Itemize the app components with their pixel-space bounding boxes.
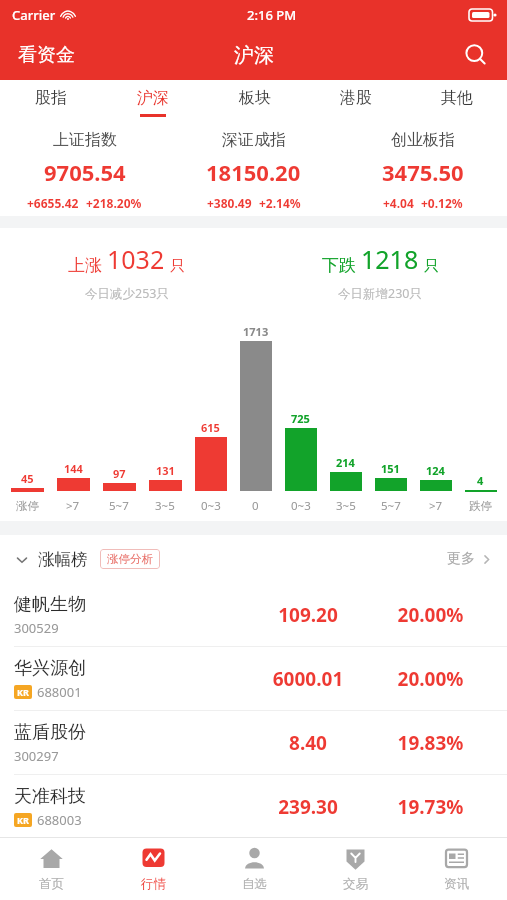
button[interactable]: 看资金: [14, 39, 79, 71]
staticText: KR: [17, 814, 29, 826]
staticText: 港股: [340, 88, 372, 108]
staticText: 300529: [14, 619, 59, 637]
staticText: 沪深: [137, 88, 169, 108]
staticText: 资讯: [444, 876, 469, 892]
staticText: 725: [291, 411, 310, 426]
button[interactable]: 天准科技: [0, 775, 507, 838]
button[interactable]: 其他: [406, 80, 507, 124]
staticText: 创业板指: [391, 130, 455, 150]
button[interactable]: 深证成指: [169, 124, 338, 216]
staticText: 300297: [14, 747, 59, 765]
staticText: 看资金: [18, 43, 75, 67]
button[interactable]: 行情: [102, 838, 204, 900]
button[interactable]: 股指: [0, 80, 102, 124]
staticText: >7: [429, 498, 443, 513]
staticText: >7: [66, 498, 80, 513]
staticText: 20.00%: [368, 666, 493, 692]
staticText: 6000.01: [248, 666, 368, 692]
staticText: 5~7: [109, 498, 129, 513]
staticText: 自选: [242, 876, 267, 892]
staticText: 其他: [441, 88, 473, 108]
staticText: 下跌: [322, 255, 356, 276]
staticText: 45: [21, 471, 34, 486]
staticText: +4.04: [383, 195, 414, 211]
staticText: 涨停: [16, 499, 39, 513]
staticText: 615: [201, 420, 220, 435]
staticText: 天准科技: [14, 785, 86, 808]
staticText: 1713: [243, 324, 269, 339]
button[interactable]: 港股: [305, 80, 406, 124]
staticText: 板块: [239, 88, 271, 108]
staticText: 19.73%: [368, 794, 493, 820]
staticText: 华兴源创: [14, 657, 86, 680]
button[interactable]: 创业板指: [338, 124, 507, 216]
staticText: +0.12%: [421, 195, 463, 211]
staticText: 沪深: [234, 43, 274, 68]
staticText: 0~3: [201, 498, 221, 513]
staticText: 只: [424, 257, 439, 276]
staticText: 8.40: [248, 730, 368, 756]
button[interactable]: 更多: [447, 550, 493, 568]
staticText: 健帆生物: [14, 593, 86, 616]
button[interactable]: 上涨: [0, 228, 253, 316]
staticText: 涨幅榜: [38, 549, 88, 570]
staticText: 19.83%: [368, 730, 493, 756]
staticText: 只: [170, 257, 185, 276]
staticText: 今日减少253只: [85, 285, 169, 302]
staticText: 688003: [37, 811, 82, 829]
staticText: +2.14%: [259, 195, 301, 211]
staticText: 20.00%: [368, 602, 493, 628]
button[interactable]: 沪深: [102, 80, 204, 124]
staticText: 97: [113, 466, 126, 481]
staticText: 214: [336, 455, 355, 470]
button[interactable]: 蓝盾股份: [0, 711, 507, 774]
staticText: +6655.42: [27, 195, 79, 211]
staticText: 131: [156, 463, 175, 478]
button[interactable]: 涨幅榜: [14, 549, 88, 570]
button[interactable]: 资讯: [406, 838, 507, 900]
staticText: 首页: [39, 876, 64, 892]
staticText: 行情: [141, 876, 166, 892]
staticText: 3475.50: [382, 157, 464, 187]
button[interactable]: Search: [459, 38, 493, 72]
button[interactable]: 健帆生物: [0, 583, 507, 646]
staticText: 交易: [343, 876, 368, 892]
staticText: KR: [17, 686, 29, 698]
staticText: 151: [381, 461, 400, 476]
staticText: +218.20%: [86, 195, 142, 211]
staticText: 109.20: [248, 602, 368, 628]
staticText: 深证成指: [222, 130, 286, 150]
staticText: 今日新增230只: [338, 285, 422, 302]
staticText: 3~5: [336, 498, 356, 513]
staticText: Carrier: [12, 6, 56, 24]
staticText: 跌停: [469, 499, 492, 513]
staticText: 上证指数: [53, 130, 117, 150]
staticText: 上涨: [68, 255, 102, 276]
staticText: 0: [252, 498, 259, 513]
staticText: 688001: [37, 683, 82, 701]
button[interactable]: 首页: [0, 838, 102, 900]
staticText: 9705.54: [44, 157, 126, 187]
button[interactable]: 下跌: [253, 228, 507, 316]
button[interactable]: 自选: [204, 838, 305, 900]
staticText: 2:16 PM: [247, 6, 297, 24]
staticText: 股指: [35, 88, 67, 108]
staticText: 1218: [361, 242, 419, 276]
staticText: 18150.20: [206, 157, 301, 187]
button[interactable]: 上证指数: [0, 124, 169, 216]
staticText: 涨停分析: [107, 552, 153, 566]
button[interactable]: 华兴源创: [0, 647, 507, 710]
staticText: 5~7: [381, 498, 401, 513]
staticText: +380.49: [207, 195, 252, 211]
staticText: 3~5: [155, 498, 175, 513]
button[interactable]: 涨停分析: [100, 549, 160, 569]
staticText: 144: [64, 461, 83, 476]
staticText: 1032: [107, 242, 165, 276]
staticText: 蓝盾股份: [14, 721, 86, 744]
staticText: 124: [426, 463, 445, 478]
staticText: 0~3: [291, 498, 311, 513]
button[interactable]: 交易: [305, 838, 406, 900]
button[interactable]: 板块: [204, 80, 305, 124]
staticText: 4: [477, 473, 484, 488]
staticText: 239.30: [248, 794, 368, 820]
